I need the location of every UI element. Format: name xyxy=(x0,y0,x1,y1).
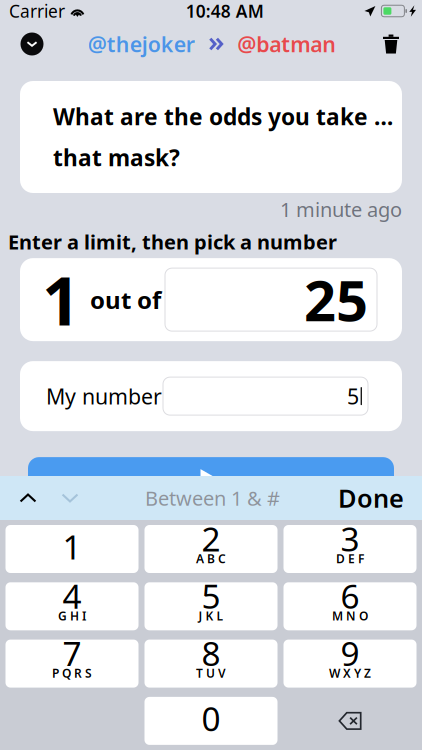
staticText: My number xyxy=(46,382,162,410)
staticText: that mask? xyxy=(53,142,180,173)
staticText: A B C xyxy=(196,550,226,566)
staticText: 9 xyxy=(340,631,359,675)
button[interactable]: 1 xyxy=(5,525,138,573)
button[interactable]: 7 xyxy=(5,640,138,688)
staticText: P Q R S xyxy=(52,665,92,681)
staticText: 1 minute ago xyxy=(280,196,402,223)
staticText: out of xyxy=(90,284,161,316)
button[interactable]: 3 xyxy=(283,525,416,573)
staticText: 6 xyxy=(340,574,359,618)
staticText: W X Y Z xyxy=(329,665,371,681)
button[interactable]: 9 xyxy=(283,640,416,688)
staticText: 1 xyxy=(62,524,81,569)
button[interactable]: Next field xyxy=(53,483,87,513)
staticText: D E F xyxy=(336,550,364,566)
staticText: 2 xyxy=(201,516,220,561)
button[interactable]: Collapse xyxy=(15,27,49,61)
staticText: Between 1 & # xyxy=(145,485,280,511)
staticText: 5 xyxy=(201,574,220,618)
button[interactable] xyxy=(0,457,422,505)
button[interactable]: Previous field xyxy=(11,483,45,513)
staticText: T U V xyxy=(196,665,226,681)
staticText: Carrier xyxy=(9,0,65,22)
staticText: 3 xyxy=(340,516,359,561)
staticText: J K L xyxy=(198,608,223,624)
staticText: @batman xyxy=(237,30,336,58)
button[interactable]: 5 xyxy=(144,582,277,630)
button[interactable]: Done xyxy=(338,481,404,515)
button[interactable]: Delete conversation xyxy=(375,28,407,60)
staticText: 5 xyxy=(347,382,359,410)
button[interactable]: 4 xyxy=(5,582,138,630)
staticText: 1 xyxy=(42,255,80,344)
staticText: 8 xyxy=(201,631,220,675)
staticText: G H I xyxy=(58,608,86,624)
staticText: 0 xyxy=(201,696,220,741)
staticText: @thejoker xyxy=(88,30,195,58)
staticText: What are the odds you take off xyxy=(53,101,402,131)
button[interactable]: 6 xyxy=(283,582,416,630)
staticText: 7 xyxy=(62,631,81,675)
staticText: Done xyxy=(338,481,404,515)
staticText: 4 xyxy=(62,574,81,618)
button[interactable]: 2 xyxy=(144,525,277,573)
button[interactable]: Delete xyxy=(283,697,416,745)
staticText: 25 xyxy=(304,262,368,337)
staticText: 10:48 AM xyxy=(186,0,264,22)
button[interactable]: 8 xyxy=(144,640,277,688)
staticText: Enter a limit, then pick a number xyxy=(8,229,337,255)
staticText: M N O xyxy=(332,608,368,624)
button[interactable]: 0 xyxy=(144,697,277,745)
